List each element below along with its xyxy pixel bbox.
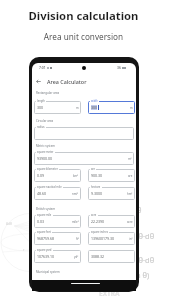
staticText: 93900.00 xyxy=(37,156,52,161)
button[interactable]: 93900.00 xyxy=(34,152,134,165)
staticText: sθ·dθ xyxy=(135,231,155,241)
staticText: square feet xyxy=(37,230,51,234)
staticText: Area Calculator xyxy=(47,78,87,85)
staticText: 107639.10 xyxy=(37,254,54,259)
staticText: 0.03 xyxy=(37,219,44,224)
staticText: 968759.68 xyxy=(37,236,54,241)
staticText: Municipal system xyxy=(36,270,60,274)
staticText: square yard xyxy=(37,248,52,252)
staticText: square inches xyxy=(91,230,108,234)
staticText: radius xyxy=(37,125,45,129)
staticText: hm² xyxy=(127,192,133,196)
button[interactable]: Back xyxy=(33,75,43,87)
button[interactable]: 0.09 xyxy=(34,169,81,182)
staticText: are xyxy=(91,167,95,171)
staticText: acre xyxy=(127,220,133,224)
staticText: 0.09 xyxy=(37,173,44,178)
button[interactable]: 48.60 xyxy=(34,187,81,200)
staticText: ft² xyxy=(76,237,79,241)
staticText: m xyxy=(130,106,133,110)
staticText: 36 xyxy=(117,65,121,70)
staticText: Division calculation xyxy=(0,8,168,23)
staticText: yd² xyxy=(74,255,79,259)
staticText: square nautical mile xyxy=(37,185,62,189)
staticText: Circular area xyxy=(36,119,54,123)
button[interactable]: 107639.10 xyxy=(34,250,81,263)
button[interactable]: 900.30 xyxy=(88,169,135,182)
staticText: acre xyxy=(91,213,97,217)
staticText: θ xyxy=(137,205,142,215)
staticText: 3088.32 xyxy=(91,254,104,259)
staticText: Area unit conversion xyxy=(0,31,168,42)
staticText: m xyxy=(76,106,79,110)
button[interactable]: 3088.32 xyxy=(88,250,135,263)
staticText: Adθ xyxy=(6,222,12,226)
staticText: nmi² xyxy=(72,192,79,196)
staticText: 300 xyxy=(37,105,44,110)
button[interactable]: 22.2390 xyxy=(88,215,135,228)
staticText: British system xyxy=(36,207,56,211)
staticText: length xyxy=(37,99,45,103)
staticText: mile² xyxy=(72,220,79,224)
button[interactable]: 9.3000 xyxy=(88,187,135,200)
staticText: square mile xyxy=(37,213,52,217)
staticText: 900.30 xyxy=(91,173,102,178)
staticText: square meter xyxy=(37,150,54,154)
staticText: EXTRA xyxy=(99,289,120,298)
staticText: 48.60 xyxy=(37,191,46,196)
staticText: n θ) xyxy=(136,270,150,280)
staticText: width xyxy=(91,99,98,103)
staticText: sθ·dθ xyxy=(135,255,155,265)
staticText: are xyxy=(128,174,133,178)
staticText: Rectangular area xyxy=(36,91,60,95)
button[interactable]: 968759.68 xyxy=(34,232,81,245)
staticText: km² xyxy=(73,174,79,178)
staticText: m² xyxy=(128,157,132,161)
staticText: 22.2390 xyxy=(91,219,104,224)
button[interactable]: 300 xyxy=(88,101,135,114)
button[interactable]: 139600179.30 xyxy=(88,232,135,245)
staticText: 7:01 xyxy=(39,65,46,70)
button[interactable] xyxy=(34,127,134,140)
staticText: Metric system xyxy=(36,144,55,148)
staticText: in² xyxy=(129,237,133,241)
button[interactable]: 300 xyxy=(34,101,81,114)
staticText: 139600179.30 xyxy=(91,236,114,241)
button[interactable]: 0.03 xyxy=(34,215,81,228)
staticText: square kilometer xyxy=(37,167,58,171)
staticText: r xyxy=(23,248,25,252)
staticText: hectare xyxy=(91,185,101,189)
staticText: 9.3000 xyxy=(91,191,102,196)
staticText: 300 xyxy=(91,105,98,110)
